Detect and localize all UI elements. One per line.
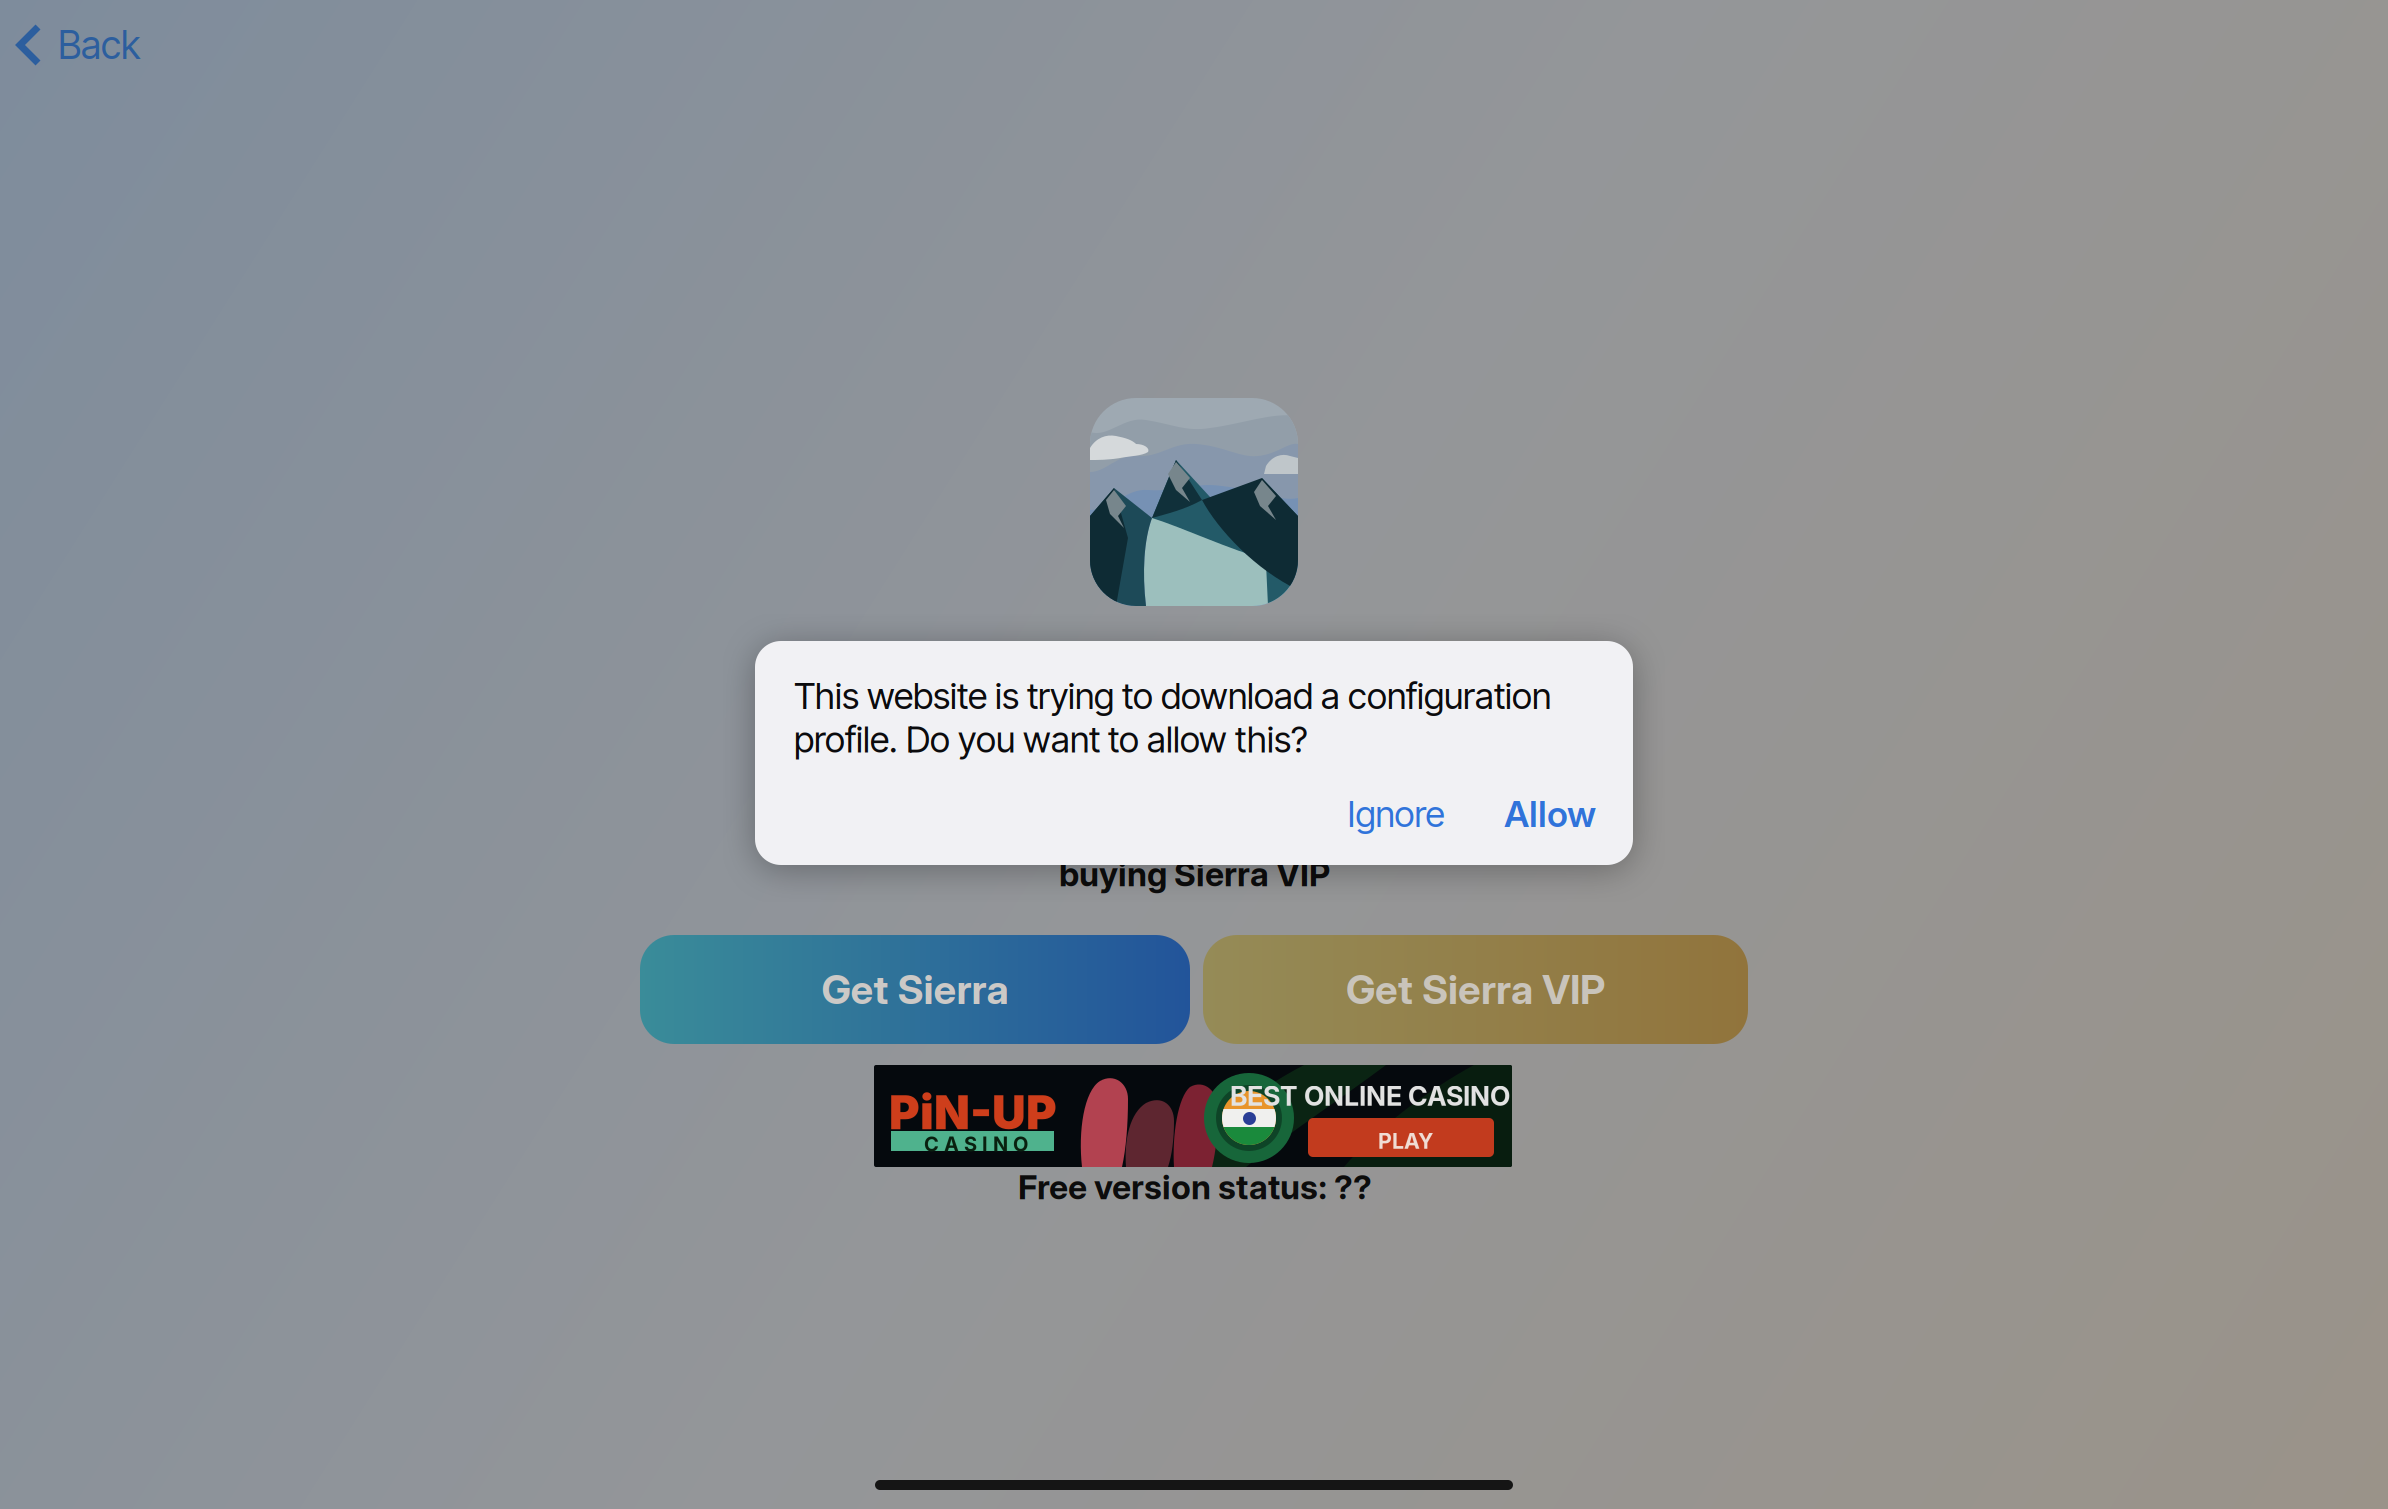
button[interactable]: Pin-Up Casino advertisement: [874, 1065, 1512, 1167]
staticText: BEST ONLINE CASINO: [1230, 1080, 1510, 1112]
button[interactable]: Allow: [1480, 779, 1620, 849]
staticText: PiN-UP: [889, 1084, 1057, 1140]
staticText: Back: [58, 22, 140, 68]
staticText: Free version status: ??: [1018, 1167, 1372, 1207]
staticText: This website is trying to download a con…: [794, 674, 1551, 761]
staticText: Allow: [1504, 792, 1596, 836]
staticText: Get Sierra: [821, 965, 1008, 1014]
staticText: buying Sierra VIP: [1059, 854, 1330, 894]
button[interactable]: Ignore: [1326, 779, 1466, 849]
button[interactable]: Get Sierra: [640, 935, 1190, 1044]
staticText: PLAY: [1378, 1128, 1434, 1154]
staticText: Ignore: [1347, 792, 1444, 836]
button[interactable]: Get Sierra VIP: [1203, 935, 1748, 1044]
button[interactable]: Back: [0, 5, 160, 85]
staticText: Get Sierra VIP: [1346, 965, 1605, 1014]
staticText: C A S I N O: [924, 1132, 1028, 1156]
